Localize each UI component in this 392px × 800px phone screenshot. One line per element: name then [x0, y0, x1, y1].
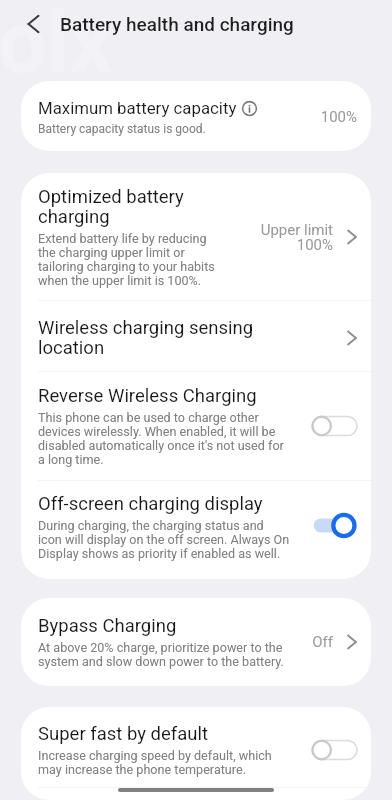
button[interactable]: Optimized battery charging	[21, 173, 371, 300]
button[interactable]: Reverse Wireless Charging	[306, 409, 363, 443]
staticText: Maximum battery capacity	[38, 98, 237, 118]
staticText: Upper limit 100%	[260, 221, 333, 254]
staticText: 100%	[320, 108, 357, 126]
staticText: Super fast by default	[38, 723, 209, 745]
button[interactable]: Wireless charging sensing location	[21, 301, 371, 371]
staticText: Battery capacity status is good.	[38, 122, 206, 136]
button[interactable]: Super fast by default	[306, 733, 363, 767]
staticText: Bypass Charging	[38, 615, 177, 637]
staticText: Battery health and charging	[60, 13, 294, 35]
staticText: Optimized battery charging	[38, 186, 184, 228]
staticText: Reverse Wireless Charging	[38, 385, 257, 407]
staticText: olx	[0, 0, 114, 93]
staticText: Extend battery life by reducing the char…	[38, 231, 215, 288]
staticText: Off-screen charging display	[38, 493, 263, 515]
staticText: This phone can be used to charge other d…	[38, 410, 284, 467]
button[interactable]: Off-screen charging display	[306, 510, 363, 544]
button[interactable]: Bypass Charging	[21, 598, 371, 686]
button[interactable]: Reverse Wireless Charging	[21, 372, 371, 480]
staticText: Off	[312, 633, 333, 651]
staticText: At above 20% charge, prioritize power to…	[38, 640, 284, 669]
staticText: During charging, the charging status and…	[38, 518, 290, 561]
staticText: Increase charging speed by default, whic…	[38, 748, 272, 777]
button[interactable]: Navigate up	[16, 8, 48, 40]
button[interactable]: Maximum battery capacity	[21, 81, 371, 151]
button[interactable]: Off-screen charging display	[21, 481, 371, 579]
button[interactable]: Super fast by default	[21, 707, 371, 787]
staticText: Wireless charging sensing location	[38, 317, 340, 359]
